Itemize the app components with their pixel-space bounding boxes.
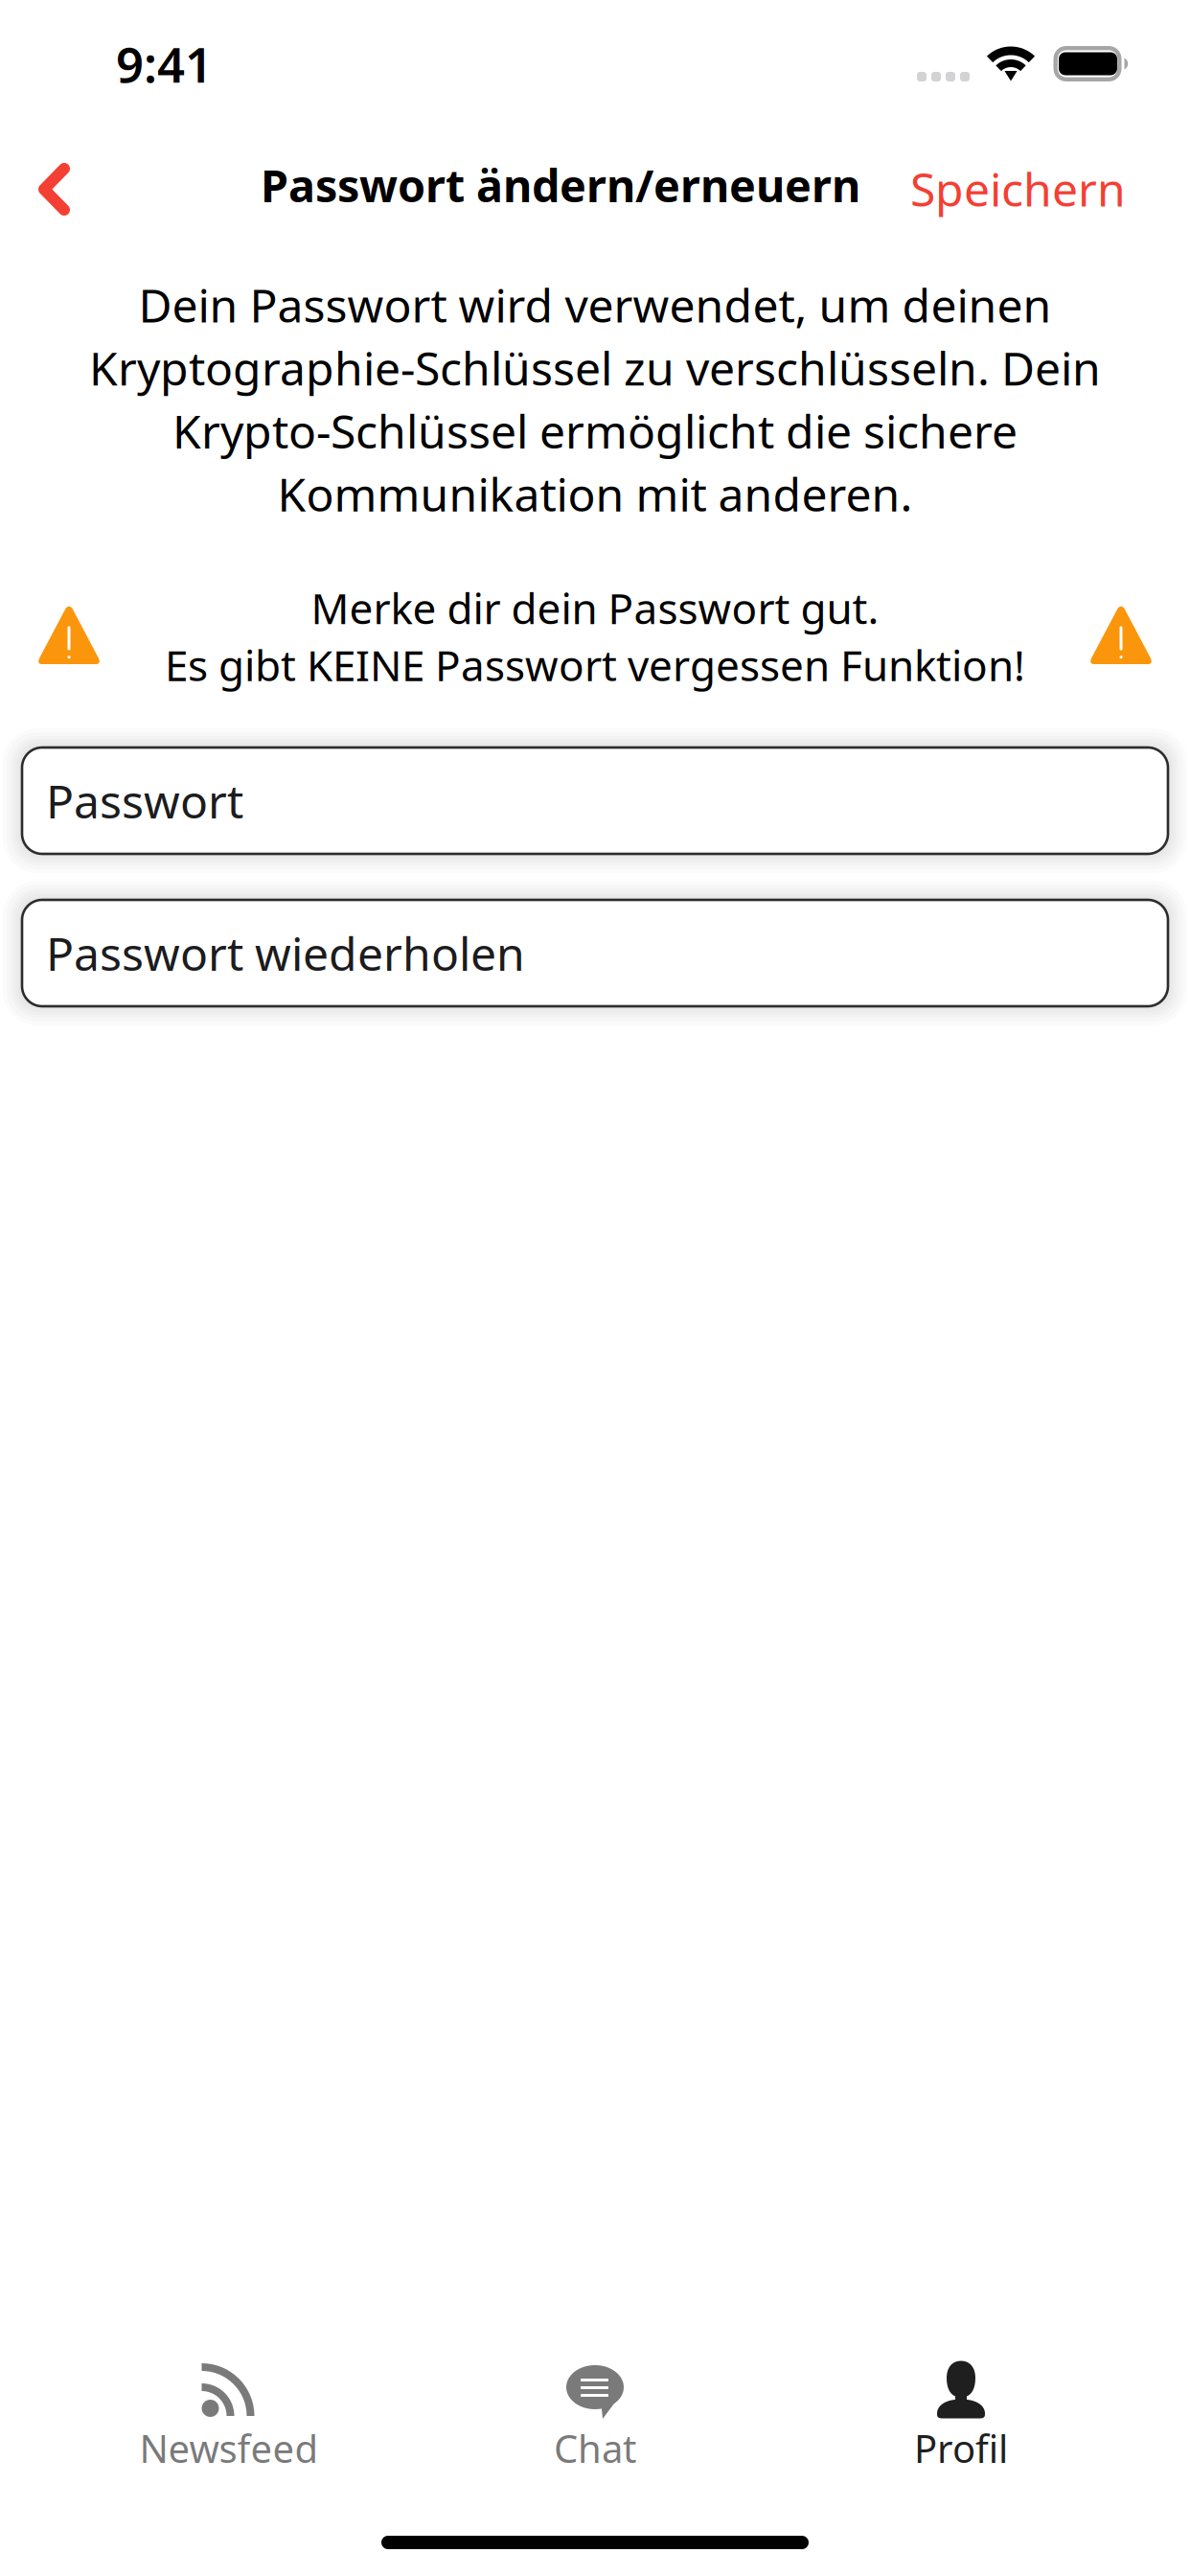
- staticText: Es gibt KEINE Passwort vergessen Funktio…: [165, 637, 1025, 693]
- staticText: Passwort ändern/erneuern: [261, 155, 860, 215]
- staticText: Kryptographie-Schlüssel zu verschlüsseln…: [89, 337, 1101, 398]
- staticText: Krypto-Schlüssel ermöglicht die sichere: [172, 400, 1018, 461]
- staticText: Speichern: [910, 158, 1126, 219]
- staticText: 9:41: [116, 32, 213, 96]
- staticText: Merke dir dein Passwort gut.: [311, 580, 879, 636]
- button[interactable]: Passwort: [22, 747, 1168, 854]
- button[interactable]: Passwort wiederholen: [22, 900, 1168, 1006]
- staticText: Profil: [914, 2423, 1008, 2474]
- staticText: Passwort wiederholen: [46, 922, 525, 984]
- staticText: Passwort: [46, 770, 243, 831]
- button[interactable]: Chat: [412, 2353, 778, 2481]
- staticText: Kommunikation mit anderen.: [277, 463, 913, 524]
- staticText: Newsfeed: [139, 2423, 319, 2474]
- staticText: Dein Passwort wird verwendet, um deinen: [138, 274, 1052, 335]
- button[interactable]: Speichern: [895, 139, 1141, 238]
- staticText: Chat: [554, 2423, 636, 2474]
- button[interactable]: Profil: [778, 2353, 1144, 2481]
- button[interactable]: Zurück: [12, 138, 116, 241]
- button[interactable]: Newsfeed: [46, 2353, 412, 2481]
